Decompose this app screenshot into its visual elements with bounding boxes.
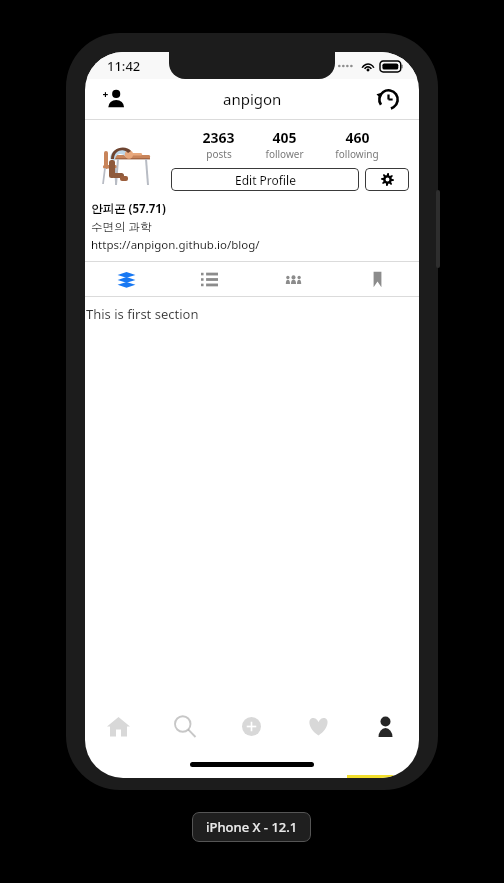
button[interactable]: Settings [365, 168, 409, 191]
button[interactable]: Activity [285, 699, 352, 753]
staticText: 수면의 과학 [91, 219, 152, 235]
staticText: following [335, 147, 379, 161]
staticText: 안피곤 (57.71) [91, 201, 166, 217]
staticText: posts [206, 147, 232, 161]
button[interactable]: List [168, 262, 251, 296]
staticText: Edit Profile [235, 172, 296, 188]
staticText: 460 [345, 128, 370, 147]
staticText: follower [265, 147, 304, 161]
staticText: 2363 [202, 128, 235, 147]
button[interactable]: Profile [352, 699, 419, 753]
button[interactable]: Add person [95, 80, 133, 118]
button[interactable]: Home [85, 699, 151, 753]
staticText: iPhone X - 12.1 [206, 818, 298, 836]
button[interactable]: Search [151, 699, 218, 753]
button[interactable]: iPhone X - 12.1 [192, 812, 311, 842]
button[interactable]: Saved [335, 262, 419, 296]
staticText: This is first section [86, 305, 199, 323]
button[interactable]: History [369, 80, 407, 118]
button[interactable]: Edit Profile [171, 168, 359, 191]
staticText: 11:42 [107, 57, 141, 75]
button[interactable]: Sections [85, 262, 168, 296]
button[interactable]: Add post [218, 699, 285, 753]
button[interactable]: https://anpigon.github.io/blog/ [91, 237, 260, 253]
staticText: 405 [272, 128, 297, 147]
staticText: anpigon [223, 89, 282, 109]
button[interactable]: People [251, 262, 335, 296]
